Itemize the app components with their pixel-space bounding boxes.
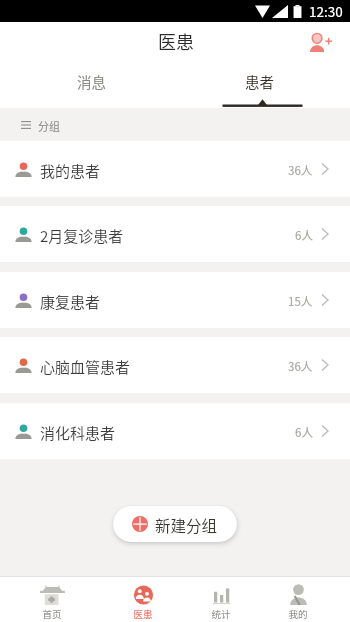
button[interactable]: 分组 — [0, 108, 350, 141]
button[interactable]: 首页 — [8, 577, 96, 622]
button[interactable]: 消化科患者 — [0, 403, 350, 459]
staticText: 我的 — [288, 607, 308, 621]
button[interactable]: 消息 — [4, 59, 179, 108]
staticText: 医患 — [133, 607, 153, 621]
button[interactable]: 我的患者 — [0, 141, 350, 197]
staticText: 6人 — [295, 227, 313, 244]
staticText: 医患 — [158, 28, 194, 54]
staticText: 6人 — [295, 424, 313, 441]
staticText: 2月复诊患者 — [40, 225, 124, 247]
button[interactable]: 我的 — [254, 577, 342, 622]
button[interactable]: 患者 — [172, 59, 347, 108]
button[interactable]: 心脑血管患者 — [0, 337, 350, 393]
staticText: 消化科患者 — [40, 422, 116, 444]
button[interactable]: 康复患者 — [0, 272, 350, 328]
staticText: 首页 — [42, 607, 62, 621]
button[interactable]: Add patient — [310, 33, 334, 52]
staticText: 新建分组 — [155, 514, 218, 536]
staticText: 36人 — [288, 358, 313, 375]
staticText: 我的患者 — [40, 160, 101, 182]
button[interactable]: 医患 — [99, 577, 187, 622]
staticText: 统计 — [211, 607, 231, 621]
staticText: 分组 — [38, 118, 60, 134]
staticText: 12:30 — [309, 1, 343, 21]
staticText: 36人 — [288, 162, 313, 179]
staticText: 康复患者 — [40, 291, 101, 313]
button[interactable]: 2月复诊患者 — [0, 206, 350, 262]
button[interactable]: 新建分组 — [113, 506, 237, 542]
staticText: 消息 — [77, 71, 106, 92]
staticText: 15人 — [288, 293, 313, 310]
staticText: 心脑血管患者 — [40, 356, 131, 378]
button[interactable]: 统计 — [177, 577, 265, 622]
staticText: 患者 — [245, 71, 274, 92]
